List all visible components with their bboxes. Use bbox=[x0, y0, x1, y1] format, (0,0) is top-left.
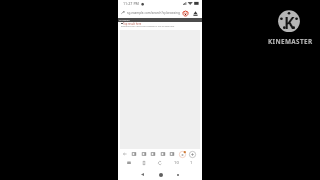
staticText: 1 bbox=[190, 160, 193, 166]
staticText: All results bbox=[119, 19, 130, 22]
staticText: 10 bbox=[174, 160, 179, 166]
button[interactable]: Windows, 1 open bbox=[186, 158, 196, 168]
button[interactable]: Tool 2 bbox=[140, 150, 147, 157]
button[interactable]: Back bbox=[121, 150, 128, 157]
staticText: K bbox=[284, 12, 295, 34]
button[interactable]: Menu bbox=[191, 8, 200, 18]
button[interactable]: Recent apps bbox=[172, 169, 183, 180]
staticText: sg.example.com/search?q=browsing bbox=[127, 11, 180, 15]
button[interactable]: Tool 4 bbox=[159, 150, 166, 157]
button[interactable]: Home bbox=[155, 169, 166, 180]
button[interactable]: New tab bbox=[188, 150, 196, 158]
button[interactable]: Bookmarks bbox=[139, 158, 149, 168]
button[interactable]: Home bbox=[124, 158, 134, 168]
button[interactable]: Tool 3 bbox=[149, 150, 156, 157]
staticText: KINEMASTER bbox=[268, 37, 313, 46]
button[interactable]: Tool 1 bbox=[130, 150, 137, 157]
button[interactable]: Tool 5 bbox=[168, 150, 175, 157]
staticText: example.com › why your browser is out of… bbox=[121, 25, 175, 28]
button[interactable]: Reload bbox=[155, 158, 165, 168]
button[interactable]: Back bbox=[137, 169, 148, 180]
staticText: Top result here bbox=[123, 22, 142, 26]
button[interactable]: Tabs, 10 open bbox=[171, 158, 181, 168]
button[interactable]: Profile bbox=[178, 150, 186, 158]
staticText: 11:27 PM ● bbox=[123, 1, 145, 6]
button[interactable]: Security shield bbox=[180, 8, 190, 18]
